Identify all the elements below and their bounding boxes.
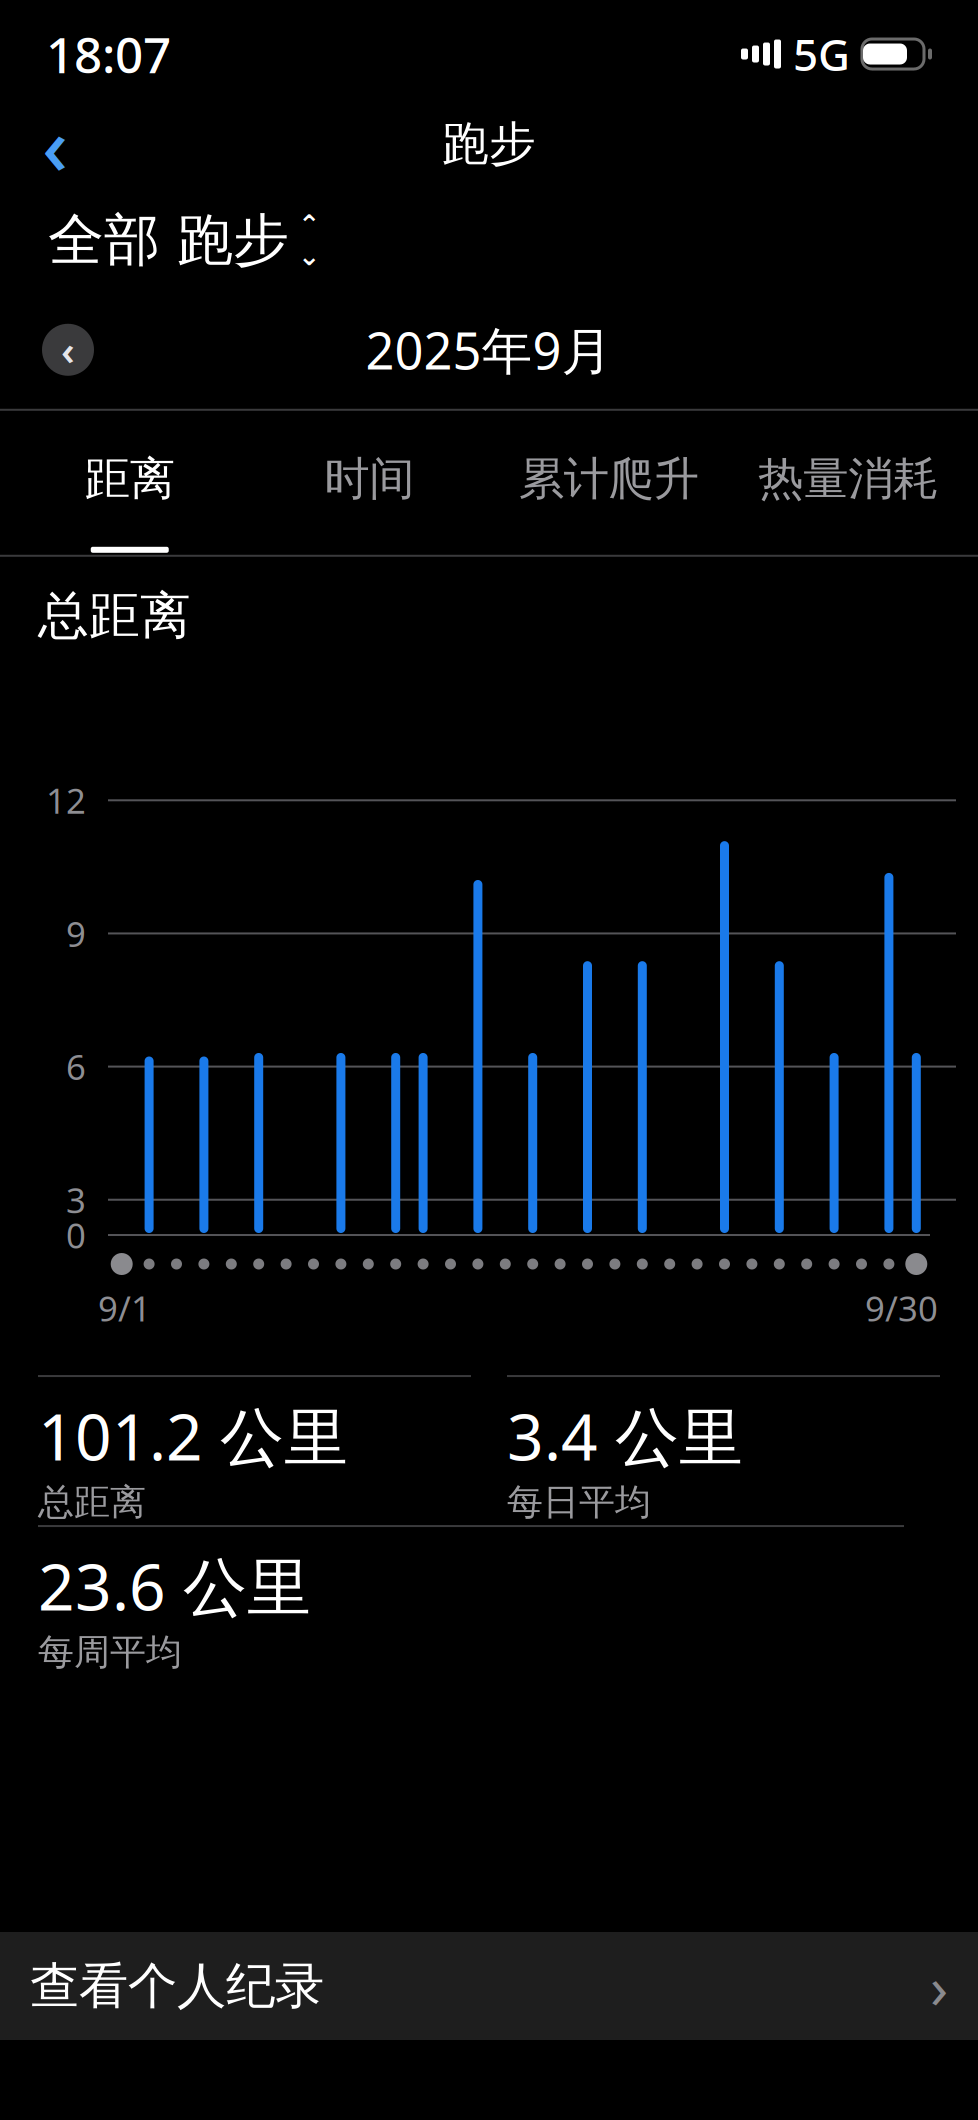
staticText: 5G [793, 25, 850, 83]
staticText: 每周平均 [38, 1630, 182, 1674]
staticText: ‹ [42, 91, 68, 197]
staticText: 热量消耗 [758, 451, 938, 507]
staticText: 9 [66, 910, 86, 956]
staticText: 12 [46, 777, 86, 823]
staticText: 101.2 公里 [38, 1393, 348, 1478]
staticText: 2025年9月 [365, 316, 612, 383]
button[interactable]: 时间 [249, 411, 489, 555]
staticText: 时间 [324, 451, 414, 507]
button[interactable]: 累计爬升 [489, 411, 728, 555]
button[interactable]: 热量消耗 [728, 411, 968, 555]
staticText: 9/1 [98, 1285, 151, 1331]
button[interactable]: 全部 跑步 [48, 200, 319, 281]
button[interactable]: 距离 [10, 411, 249, 555]
staticText: 9/30 [865, 1285, 938, 1331]
button[interactable]: 查看个人纪录 [0, 1932, 978, 2040]
button[interactable]: 返回 [22, 111, 88, 177]
staticText: › [930, 1947, 948, 2025]
staticText: ⌄ [298, 241, 320, 271]
staticText: 0 [66, 1212, 86, 1258]
staticText: 3.4 公里 [507, 1393, 743, 1478]
staticText: 3 [66, 1177, 86, 1223]
staticText: ‹ [61, 323, 75, 376]
staticText: 总距离 [38, 1480, 146, 1524]
staticText: 查看个人纪录 [30, 1956, 324, 2016]
staticText: 18:07 [46, 21, 171, 87]
staticText: 累计爬升 [519, 451, 699, 507]
staticText: 6 [66, 1044, 86, 1090]
staticText: ⌃ [298, 210, 320, 240]
staticText: 总距离 [38, 585, 191, 647]
staticText: 每日平均 [507, 1480, 651, 1524]
staticText: 距离 [85, 451, 175, 507]
staticText: 全部 跑步 [48, 206, 289, 275]
staticText: 跑步 [442, 115, 536, 173]
staticText: 23.6 公里 [38, 1543, 311, 1628]
button[interactable]: 上个月 [42, 323, 94, 376]
